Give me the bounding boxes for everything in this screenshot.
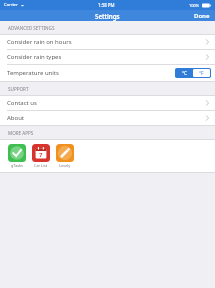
staticText: About xyxy=(7,114,25,122)
staticText: Lovely xyxy=(59,163,71,168)
button[interactable]: Consider rain types xyxy=(0,50,215,64)
staticText: Done xyxy=(194,12,210,20)
staticText: ADVANCED SETTINGS xyxy=(8,25,55,31)
button[interactable]: Celsius xyxy=(176,69,193,77)
staticText: 7 xyxy=(39,151,43,159)
staticText: Car List xyxy=(34,163,48,168)
staticText: °C xyxy=(182,70,188,77)
button[interactable]: Contact us xyxy=(0,96,215,110)
staticText: 100% xyxy=(189,3,200,8)
staticText: Carrier xyxy=(4,2,18,8)
staticText: 1:58 PM xyxy=(98,2,115,8)
button[interactable]: About xyxy=(0,111,215,125)
button[interactable]: Fahrenheit xyxy=(193,69,210,77)
button[interactable]: Done xyxy=(189,10,215,21)
staticText: Consider rain on hours xyxy=(7,38,72,46)
button[interactable]: Car List xyxy=(31,144,51,168)
button[interactable]: Lovely xyxy=(55,144,75,168)
staticText: Consider rain types xyxy=(7,53,62,61)
staticText: Contact us xyxy=(7,99,37,107)
staticText: SUPPORT xyxy=(8,86,29,92)
staticText: Temperature units xyxy=(7,69,59,77)
staticText: Settings xyxy=(95,12,120,20)
staticText: gTasks xyxy=(11,163,23,168)
staticText: °F xyxy=(199,70,204,77)
button[interactable]: Consider rain on hours xyxy=(0,35,215,49)
staticText: MORE APPS xyxy=(8,130,34,136)
button[interactable]: gTasks xyxy=(7,144,27,168)
